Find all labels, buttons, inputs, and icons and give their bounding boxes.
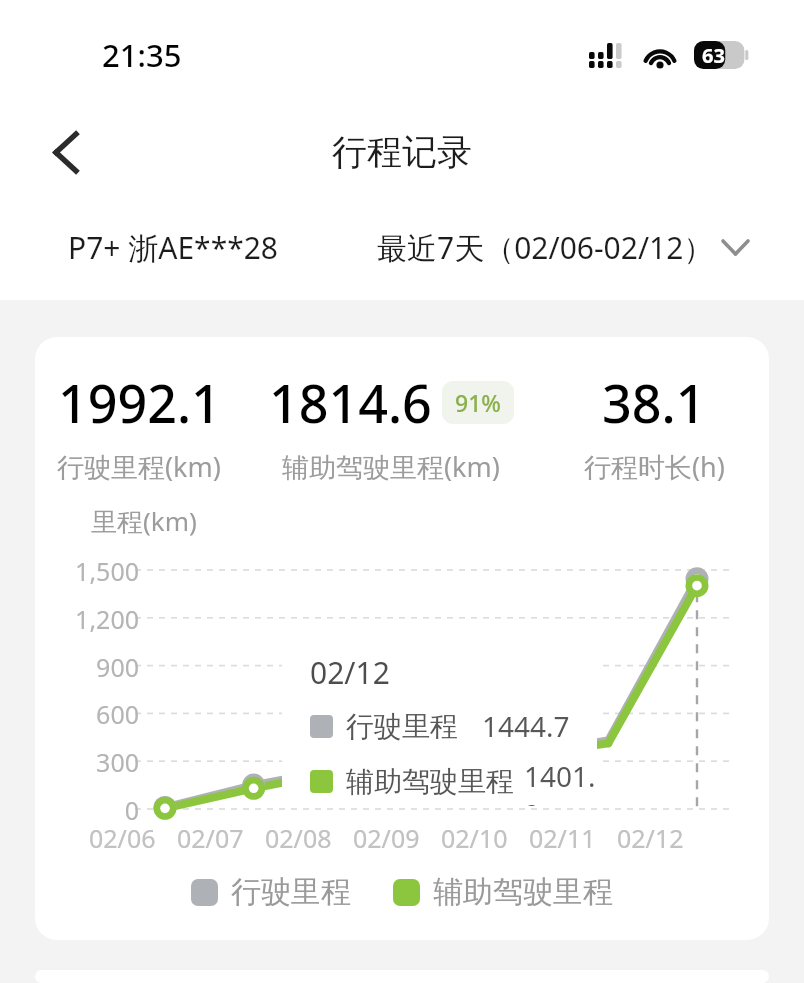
staticText: 1401.9: [524, 757, 597, 806]
staticText: 1814.6: [269, 367, 432, 438]
staticText: 1,200: [53, 602, 139, 636]
staticText: 02/12: [617, 821, 684, 855]
staticText: 900: [53, 650, 139, 684]
staticText: 300: [53, 745, 139, 779]
staticText: 91%: [455, 387, 501, 418]
staticText: 辅助驾驶里程(km): [282, 448, 500, 485]
button[interactable]: 最近7天（02/06-02/12）: [377, 227, 749, 268]
button[interactable]: 行驶里程: [191, 873, 351, 911]
staticText: 0: [53, 793, 139, 827]
staticText: 1,500: [53, 554, 139, 588]
staticText: 行驶里程: [346, 709, 458, 744]
staticText: 63: [702, 42, 725, 69]
staticText: 02/09: [353, 821, 420, 855]
staticText: 600: [53, 697, 139, 731]
staticText: 02/08: [265, 821, 332, 855]
staticText: 21:35: [102, 34, 182, 76]
staticText: 行驶里程(km): [57, 448, 221, 485]
staticText: P7+ 浙AE***28: [68, 227, 279, 268]
button[interactable]: 辅助驾驶里程: [393, 873, 613, 911]
staticText: 辅助驾驶里程: [433, 873, 613, 911]
staticText: 行程记录: [332, 130, 472, 174]
staticText: 最近7天（02/06-02/12）: [377, 227, 714, 268]
staticText: 1992.1: [58, 367, 221, 438]
staticText: 02/07: [177, 821, 244, 855]
staticText: 里程(km): [91, 503, 197, 539]
staticText: 行驶里程: [231, 873, 351, 911]
button[interactable]: Back: [30, 117, 100, 187]
staticText: 辅助驾驶里程: [346, 764, 514, 799]
staticText: 02/10: [441, 821, 508, 855]
staticText: 1444.7: [482, 707, 570, 745]
staticText: 行程时长(h): [584, 448, 725, 485]
staticText: 02/11: [529, 821, 596, 855]
staticText: 02/12: [310, 652, 390, 693]
staticText: 38.1: [602, 367, 706, 438]
staticText: 02/06: [89, 821, 156, 855]
